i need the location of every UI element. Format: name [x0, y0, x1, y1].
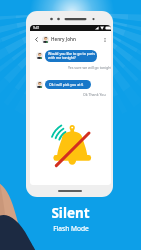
- button[interactable]: More options: [100, 35, 109, 44]
- button[interactable]: Would you like to go to paris with me to…: [45, 50, 97, 62]
- staticText: Flash Mode: [53, 224, 89, 233]
- staticText: Yes sure we will go tonight: [68, 65, 111, 70]
- staticText: Ok Thank You: [83, 92, 106, 97]
- staticText: Would you like to go to paris with me to…: [48, 51, 95, 60]
- staticText: Silent: [51, 204, 90, 222]
- button[interactable]: Ok i will pick you at 6: [45, 80, 91, 89]
- button[interactable]: Back: [32, 35, 40, 43]
- staticText: Henry John: [51, 36, 76, 42]
- staticText: Ok i will pick you at 6: [49, 82, 84, 87]
- staticText: 9:41: [33, 26, 40, 30]
